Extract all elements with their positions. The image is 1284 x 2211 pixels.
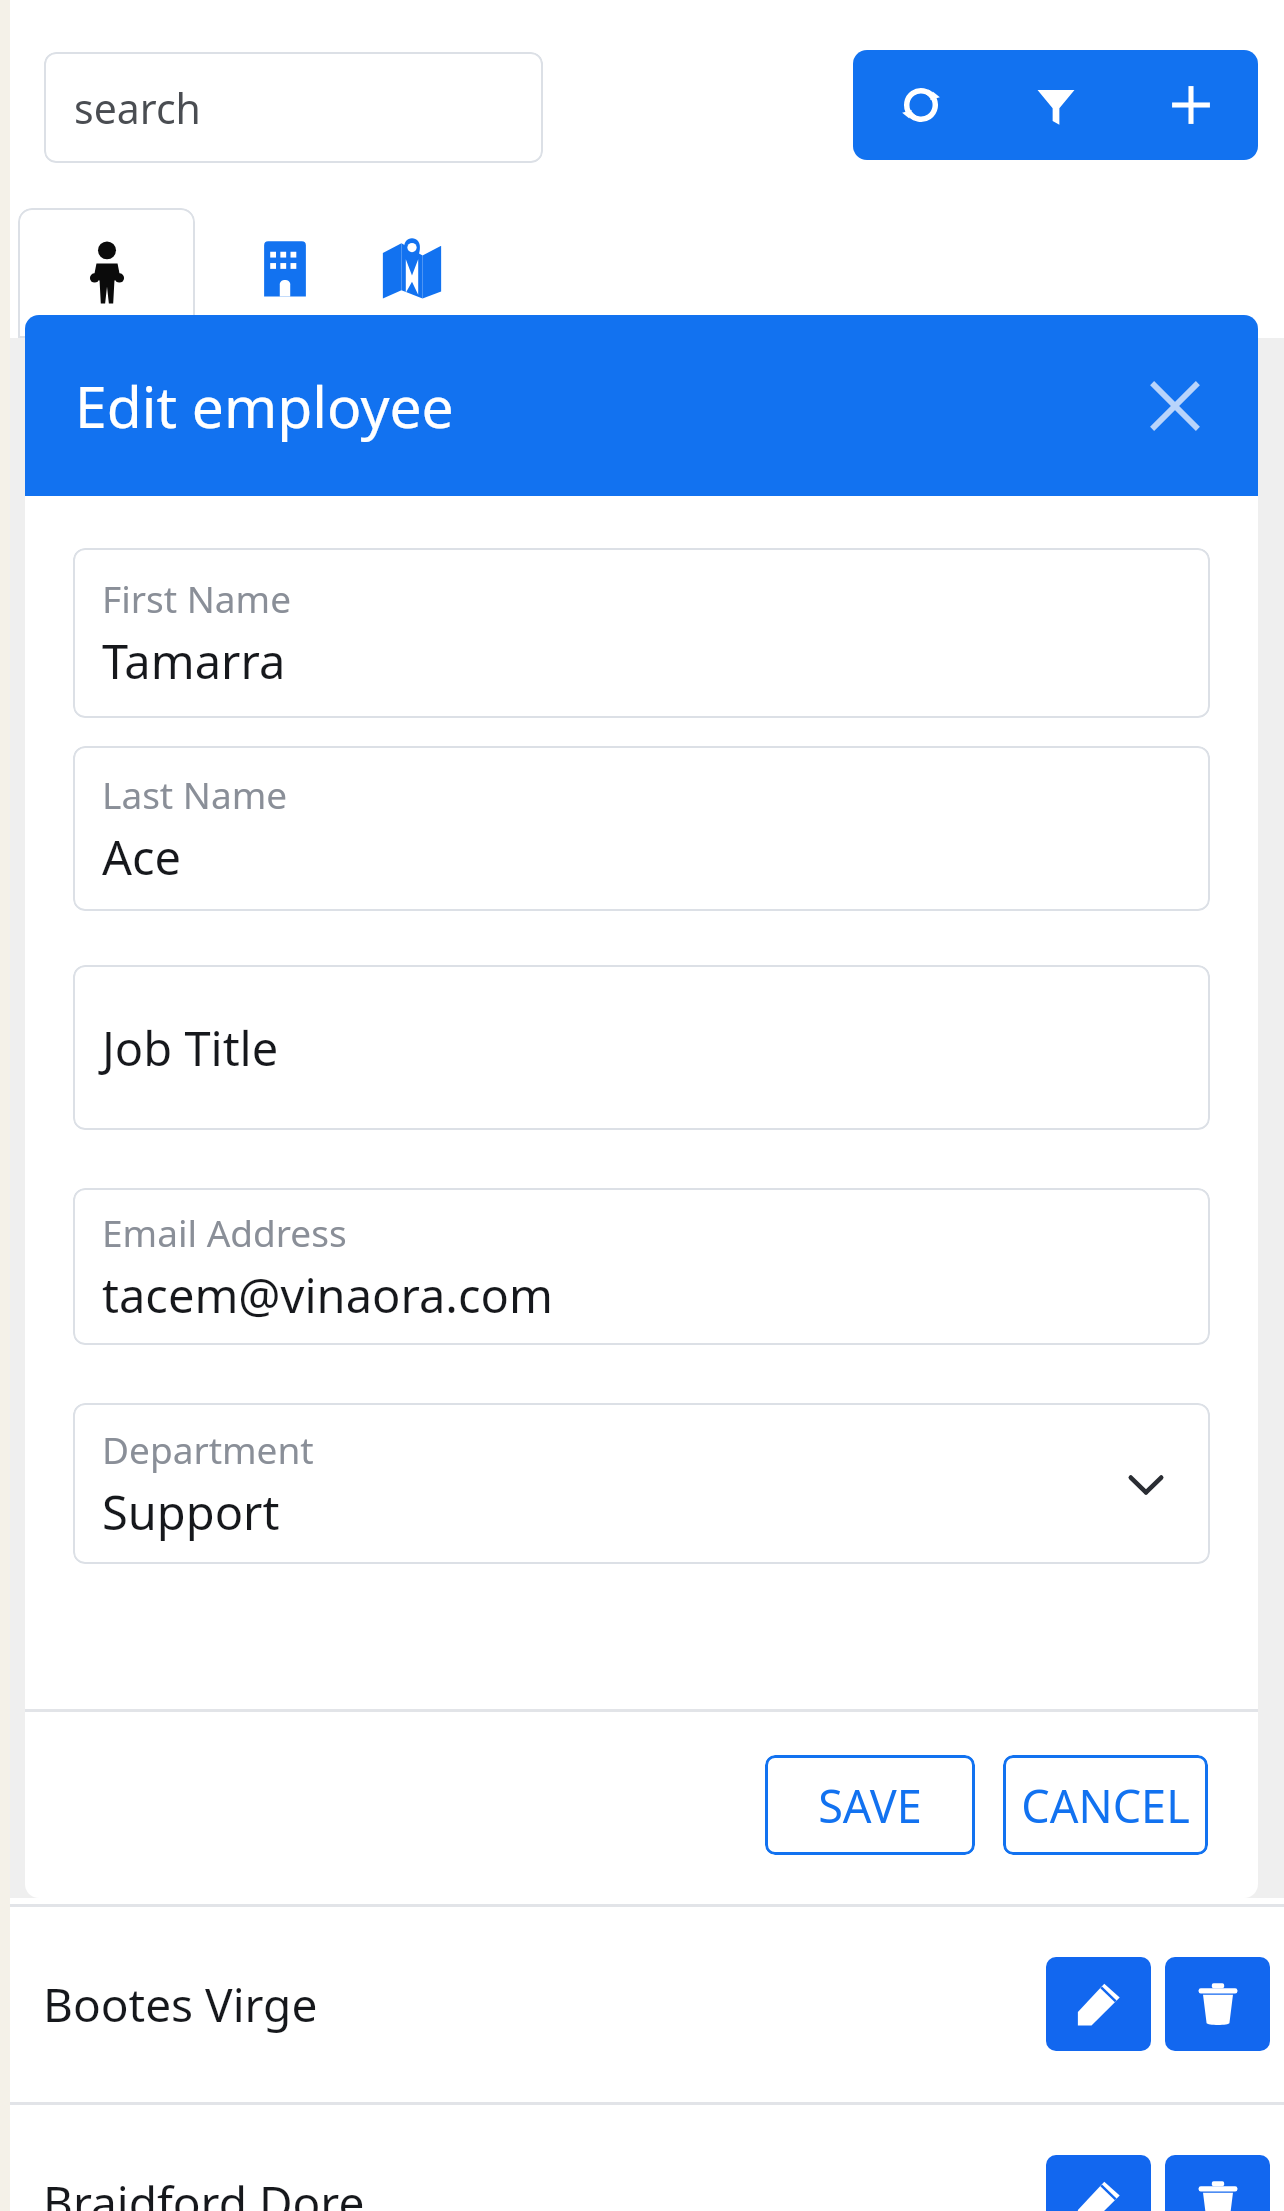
staticText: Edit employee <box>75 367 454 445</box>
staticText: Department <box>102 1424 314 1474</box>
button[interactable]: Edit <box>1046 2155 1151 2211</box>
staticText: Bootes Virge <box>43 1973 1046 2036</box>
staticText: Last Name <box>102 769 288 819</box>
button[interactable]: Close <box>1132 363 1218 449</box>
button[interactable]: Email Address <box>73 1188 1210 1345</box>
staticText: Support <box>102 1480 280 1544</box>
staticText: Email Address <box>102 1207 347 1257</box>
staticText: CANCEL <box>1021 1775 1190 1836</box>
button[interactable]: First Name <box>73 548 1210 718</box>
button[interactable] <box>18 208 195 338</box>
button[interactable]: Delete <box>1165 2155 1270 2211</box>
button[interactable]: Job Title <box>73 965 1210 1130</box>
staticText: SAVE <box>818 1775 922 1836</box>
button[interactable]: Department <box>73 1403 1210 1564</box>
staticText: Job Title <box>102 1016 279 1080</box>
button[interactable]: Filter <box>988 50 1123 160</box>
staticText: Tamarra <box>102 629 286 693</box>
button[interactable]: search <box>44 52 543 163</box>
button[interactable]: Delete <box>1165 1957 1270 2051</box>
staticText: Ace <box>102 825 182 889</box>
button[interactable]: Map <box>352 208 472 328</box>
staticText: search <box>74 80 201 136</box>
button[interactable]: Last Name <box>73 746 1210 911</box>
button[interactable]: CANCEL <box>1003 1755 1208 1855</box>
button[interactable]: Edit <box>1046 1957 1151 2051</box>
button[interactable]: SAVE <box>765 1755 975 1855</box>
button[interactable]: Bootes Virge <box>10 1904 1284 2104</box>
button[interactable]: Refresh <box>853 50 988 160</box>
staticText: Braidford Dore <box>43 2171 1046 2211</box>
button[interactable]: Companies <box>225 208 345 328</box>
button[interactable]: Braidford Dore <box>10 2102 1284 2211</box>
button[interactable]: Add <box>1123 50 1258 160</box>
staticText: First Name <box>102 573 292 623</box>
staticText: tacem@vinaora.com <box>102 1263 553 1327</box>
